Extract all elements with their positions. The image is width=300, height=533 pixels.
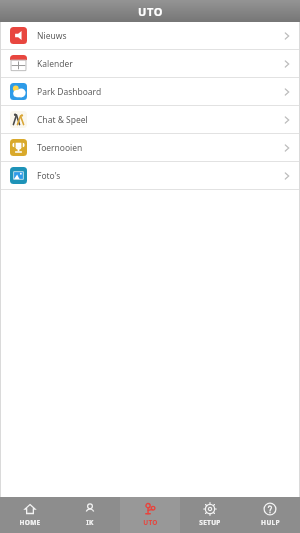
staticText: SETUP (199, 518, 221, 527)
staticText: UTO (143, 518, 158, 527)
staticText: Foto's (37, 170, 61, 182)
staticText: Chat & Speel (37, 114, 88, 126)
button[interactable]: Toernooien (0, 134, 300, 161)
button[interactable]: IK (60, 497, 120, 533)
button[interactable]: Foto's (0, 162, 300, 189)
staticText: UTO (138, 4, 163, 19)
button[interactable]: SETUP (180, 497, 240, 533)
button[interactable]: Nieuws (0, 22, 300, 49)
staticText: HOME (19, 518, 41, 527)
button[interactable]: Chat & Speel (0, 106, 300, 133)
staticText: IK (86, 518, 94, 527)
staticText: Toernooien (37, 142, 83, 154)
button[interactable]: Kalender (0, 50, 300, 77)
button[interactable]: HOME (0, 497, 60, 533)
staticText: Kalender (37, 58, 73, 70)
button[interactable]: Park Dashboard (0, 78, 300, 105)
staticText: Park Dashboard (37, 86, 102, 98)
staticText: HULP (261, 518, 280, 527)
staticText: Nieuws (37, 30, 67, 42)
button[interactable]: HULP (240, 497, 300, 533)
button[interactable]: UTO (120, 497, 180, 533)
